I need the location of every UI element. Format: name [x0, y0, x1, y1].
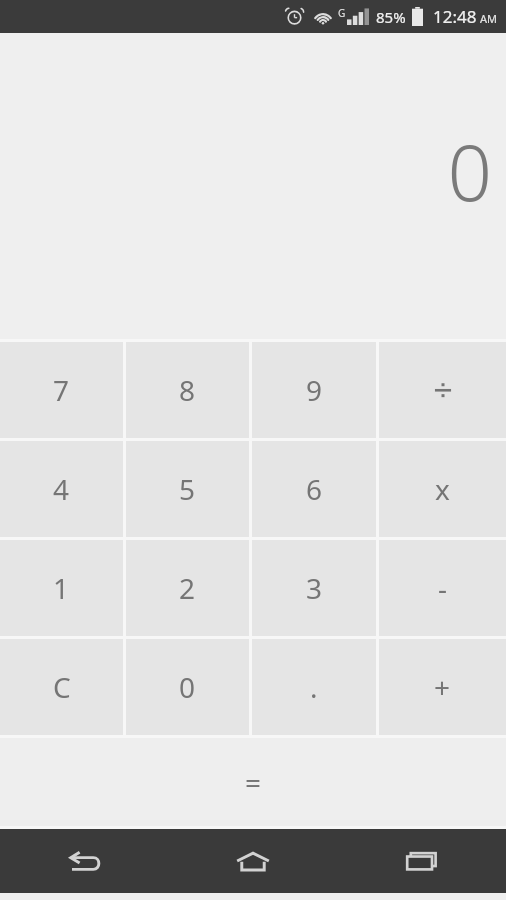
- staticText: .: [310, 668, 318, 706]
- staticText: x: [435, 470, 450, 508]
- staticText: -: [438, 569, 448, 607]
- button[interactable]: -: [379, 540, 506, 636]
- button[interactable]: 8: [126, 342, 249, 438]
- button[interactable]: C: [0, 639, 123, 735]
- staticText: 8: [179, 371, 196, 409]
- button[interactable]: Recent apps: [337, 829, 506, 893]
- staticText: 85%: [376, 7, 406, 27]
- button[interactable]: 9: [252, 342, 376, 438]
- staticText: 5: [179, 470, 196, 508]
- staticText: 12:48: [433, 5, 477, 28]
- button[interactable]: 5: [126, 441, 249, 537]
- staticText: 6: [306, 470, 323, 508]
- button[interactable]: 7: [0, 342, 123, 438]
- staticText: AM: [480, 11, 498, 26]
- staticText: 1: [53, 569, 70, 607]
- staticText: 2: [179, 569, 196, 607]
- button[interactable]: 3: [252, 540, 376, 636]
- button[interactable]: 4: [0, 441, 123, 537]
- button[interactable]: 2: [126, 540, 249, 636]
- button[interactable]: +: [379, 639, 506, 735]
- staticText: 9: [306, 371, 323, 409]
- staticText: 0: [447, 118, 492, 224]
- staticText: G: [338, 6, 346, 20]
- button[interactable]: Back: [0, 829, 168, 893]
- button[interactable]: 1: [0, 540, 123, 636]
- staticText: C: [53, 668, 71, 706]
- staticText: +: [434, 668, 451, 706]
- button[interactable]: =: [0, 738, 506, 826]
- staticText: 3: [306, 569, 323, 607]
- button[interactable]: 0: [126, 639, 249, 735]
- button[interactable]: [379, 342, 506, 438]
- staticText: 4: [53, 470, 70, 508]
- button[interactable]: 6: [252, 441, 376, 537]
- staticText: =: [245, 763, 262, 801]
- staticText: 7: [53, 371, 70, 409]
- button[interactable]: x: [379, 441, 506, 537]
- button[interactable]: Home: [168, 829, 337, 893]
- staticText: 0: [179, 668, 196, 706]
